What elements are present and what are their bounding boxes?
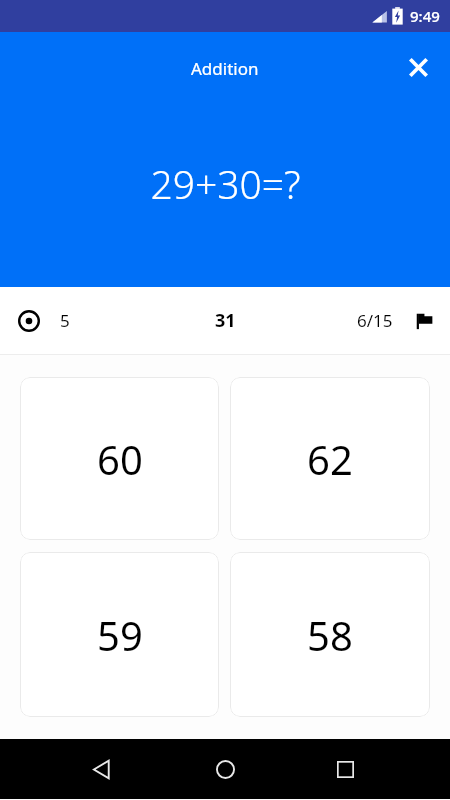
staticText: 62 [307, 432, 353, 486]
staticText: 29+30=? [150, 157, 301, 210]
button[interactable]: 60 [20, 377, 219, 540]
button[interactable]: 62 [230, 377, 430, 540]
staticText: 60 [97, 432, 143, 486]
button[interactable]: Back [78, 746, 124, 792]
staticText: Addition [191, 57, 259, 80]
staticText: 6/15 [357, 309, 393, 332]
staticText: 9:49 [410, 6, 440, 26]
staticText: 5 [60, 309, 70, 332]
button[interactable]: Recents [322, 746, 368, 792]
button[interactable]: Home [202, 746, 248, 792]
staticText: 31 [215, 308, 236, 333]
staticText: 58 [307, 608, 353, 662]
button[interactable]: 59 [20, 552, 219, 717]
staticText: 59 [97, 608, 143, 662]
button[interactable]: 58 [230, 552, 430, 717]
button[interactable]: Close [396, 45, 440, 89]
